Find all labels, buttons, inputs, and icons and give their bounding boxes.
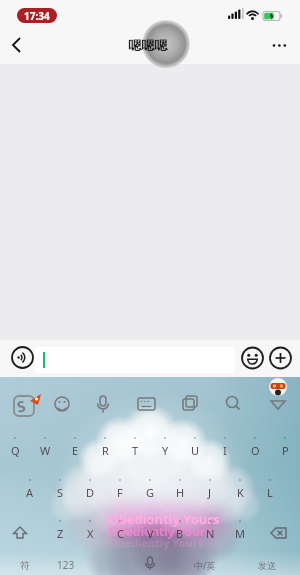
button[interactable]: 17:34 (17, 8, 57, 23)
staticText: 中/英 (194, 559, 216, 571)
button[interactable] (240, 345, 265, 370)
button[interactable]: B (165, 523, 195, 543)
button[interactable] (35, 347, 235, 373)
staticText: X (87, 526, 94, 541)
staticText: J (208, 485, 212, 500)
button[interactable] (268, 345, 293, 370)
staticText: E (72, 443, 79, 458)
button[interactable]: L (255, 482, 285, 502)
staticText: Q (11, 443, 20, 458)
staticText: U (191, 443, 200, 458)
button[interactable]: F (105, 482, 135, 502)
button[interactable] (4, 33, 28, 57)
button[interactable]: A (15, 482, 45, 502)
staticText: Obediently Yours (10, 523, 300, 539)
staticText: L (267, 485, 273, 500)
staticText: A (26, 485, 34, 500)
button[interactable]: 中/英 (190, 555, 220, 575)
button[interactable]: Z (45, 523, 75, 543)
staticText: F (117, 485, 123, 500)
staticText: K (237, 485, 244, 500)
staticText: T (132, 443, 139, 458)
staticText: H (176, 485, 185, 500)
button[interactable]: M (225, 523, 255, 543)
button[interactable]: S (45, 482, 75, 502)
button[interactable]: 符 (10, 555, 40, 575)
button[interactable] (10, 345, 35, 370)
staticText: N (206, 526, 215, 541)
button[interactable]: T (120, 440, 150, 460)
staticText: I (223, 443, 227, 458)
staticText: D (86, 485, 95, 500)
staticText: Z (57, 526, 64, 541)
staticText: C (117, 526, 124, 541)
staticText: S (15, 395, 28, 417)
staticText: P (282, 443, 289, 458)
button[interactable]: 123 (51, 555, 81, 575)
staticText: Obediently Yours (14, 510, 300, 528)
staticText: Y (162, 443, 169, 458)
staticText: 123 (57, 558, 75, 572)
staticText: G (146, 485, 155, 500)
staticText: Obediently Yours (14, 510, 300, 528)
button[interactable]: X (75, 523, 105, 543)
button[interactable]: U (180, 440, 210, 460)
button[interactable]: Y (150, 440, 180, 460)
button[interactable]: I (210, 440, 240, 460)
button[interactable] (268, 33, 294, 57)
button[interactable]: O (240, 440, 270, 460)
staticText: 发送 (258, 560, 276, 571)
staticText: O (251, 443, 260, 458)
button[interactable]: N (195, 523, 225, 543)
staticText: S (57, 485, 64, 500)
staticText: 符 (20, 559, 30, 572)
button[interactable]: K (225, 482, 255, 502)
button[interactable]: J (195, 482, 225, 502)
button[interactable]: E (60, 440, 90, 460)
button[interactable]: G (135, 482, 165, 502)
button[interactable]: R (90, 440, 120, 460)
button[interactable]: Q (0, 440, 30, 460)
staticText: R (102, 443, 109, 458)
staticText: B (176, 526, 184, 541)
staticText: 嗯嗯嗯 (0, 37, 296, 53)
button[interactable]: C (105, 523, 135, 543)
button[interactable]: W (30, 440, 60, 460)
staticText: W (40, 443, 51, 458)
button[interactable]: V (135, 523, 165, 543)
staticText: 17:34 (24, 9, 50, 23)
button[interactable]: 发送 (252, 555, 282, 575)
staticText: M (235, 526, 245, 541)
button[interactable]: P (270, 440, 300, 460)
button[interactable]: H (165, 482, 195, 502)
staticText: V (147, 526, 154, 541)
staticText: Obediently Yours (6, 535, 300, 550)
button[interactable]: D (75, 482, 105, 502)
